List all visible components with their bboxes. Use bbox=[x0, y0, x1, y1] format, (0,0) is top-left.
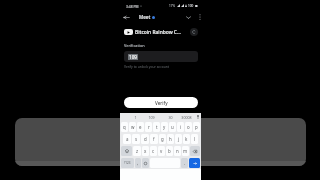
button[interactable]: f bbox=[150, 134, 158, 144]
button[interactable]: Restart bbox=[190, 28, 198, 36]
staticText: Verify to unlock your account bbox=[124, 64, 170, 68]
button[interactable]: 1 bbox=[127, 113, 143, 121]
button[interactable]: s bbox=[132, 134, 140, 144]
staticText: x bbox=[144, 148, 147, 154]
staticText: Meet bbox=[139, 14, 151, 20]
button[interactable]: 109 bbox=[124, 51, 198, 62]
button[interactable]: 109 bbox=[143, 113, 159, 121]
button[interactable]: ?123 bbox=[121, 158, 134, 168]
staticText: f bbox=[153, 136, 155, 142]
staticText: 30 bbox=[168, 115, 173, 120]
button[interactable]: r bbox=[145, 122, 152, 132]
staticText: 17% bbox=[169, 4, 176, 8]
staticText: Verify bbox=[155, 100, 168, 106]
staticText: q bbox=[123, 124, 126, 130]
staticText: r bbox=[148, 124, 150, 130]
button[interactable]: b bbox=[166, 146, 173, 156]
staticText: n bbox=[176, 148, 179, 154]
staticText: 109 bbox=[148, 115, 155, 120]
button[interactable]: h bbox=[167, 134, 174, 144]
staticText: k bbox=[185, 136, 188, 142]
staticText: Verification bbox=[124, 43, 145, 48]
button[interactable]: q bbox=[121, 122, 128, 132]
button[interactable]: k bbox=[183, 134, 190, 144]
staticText: d bbox=[144, 136, 147, 142]
staticText: b bbox=[168, 148, 171, 154]
staticText: h bbox=[169, 136, 172, 142]
staticText: a bbox=[126, 136, 129, 142]
button[interactable]: p bbox=[193, 122, 200, 132]
button[interactable]: w bbox=[129, 122, 136, 132]
button[interactable]: a bbox=[123, 134, 131, 144]
staticText: g bbox=[161, 136, 164, 142]
button[interactable]: y bbox=[161, 122, 168, 132]
button[interactable]: 30 bbox=[162, 113, 178, 121]
button[interactable]: . bbox=[181, 158, 188, 168]
staticText: v bbox=[160, 148, 163, 154]
button[interactable]: Shift bbox=[121, 146, 132, 156]
staticText: u bbox=[171, 124, 174, 130]
staticText: i bbox=[180, 124, 182, 130]
button[interactable]: c bbox=[150, 146, 157, 156]
staticText: t bbox=[156, 124, 158, 130]
button[interactable]: m bbox=[182, 146, 189, 156]
staticText: o bbox=[187, 124, 190, 130]
staticText: , bbox=[137, 160, 139, 166]
button[interactable]: i bbox=[177, 122, 184, 132]
staticText: 109 bbox=[129, 54, 137, 60]
button[interactable]: u bbox=[169, 122, 176, 132]
staticText: w bbox=[131, 124, 135, 130]
button[interactable]: x bbox=[142, 146, 149, 156]
button[interactable]: v bbox=[158, 146, 165, 156]
staticText: s bbox=[135, 136, 138, 142]
button[interactable]: n bbox=[174, 146, 181, 156]
button[interactable]: Back bbox=[121, 12, 132, 23]
button[interactable]: l bbox=[191, 134, 198, 144]
button[interactable]: d bbox=[141, 134, 149, 144]
staticText: 30008 bbox=[181, 115, 192, 120]
button[interactable]: , bbox=[135, 158, 141, 168]
staticText: p bbox=[195, 124, 198, 130]
button[interactable]: j bbox=[175, 134, 182, 144]
button[interactable]: Expand bbox=[183, 12, 193, 22]
staticText: ?123 bbox=[124, 161, 131, 165]
staticText: m bbox=[183, 148, 188, 154]
button[interactable]: o bbox=[185, 122, 192, 132]
staticText: 1 bbox=[134, 115, 137, 120]
button[interactable]: g bbox=[159, 134, 166, 144]
button[interactable]: More options bbox=[195, 12, 205, 22]
button[interactable]: Enter bbox=[189, 158, 200, 168]
staticText: 3:48 PM bbox=[126, 4, 139, 8]
staticText: l bbox=[194, 136, 196, 142]
button[interactable]: e bbox=[137, 122, 144, 132]
staticText: Bitcoin Rainbow C... bbox=[135, 29, 181, 36]
staticText: . bbox=[184, 160, 186, 166]
button[interactable]: t bbox=[153, 122, 160, 132]
staticText: e bbox=[139, 124, 142, 130]
staticText: y bbox=[163, 124, 166, 130]
button[interactable]: z bbox=[133, 146, 141, 156]
staticText: z bbox=[136, 148, 139, 154]
staticText: j bbox=[178, 136, 180, 142]
button[interactable]: Backspace bbox=[190, 146, 200, 156]
button[interactable]: 30008 bbox=[178, 113, 194, 121]
staticText: 100 bbox=[188, 4, 194, 8]
staticText: c bbox=[152, 148, 155, 154]
button[interactable]: Verify bbox=[124, 97, 198, 108]
button[interactable]: Emoji bbox=[142, 158, 149, 168]
button[interactable]: Voice input bbox=[194, 113, 201, 121]
